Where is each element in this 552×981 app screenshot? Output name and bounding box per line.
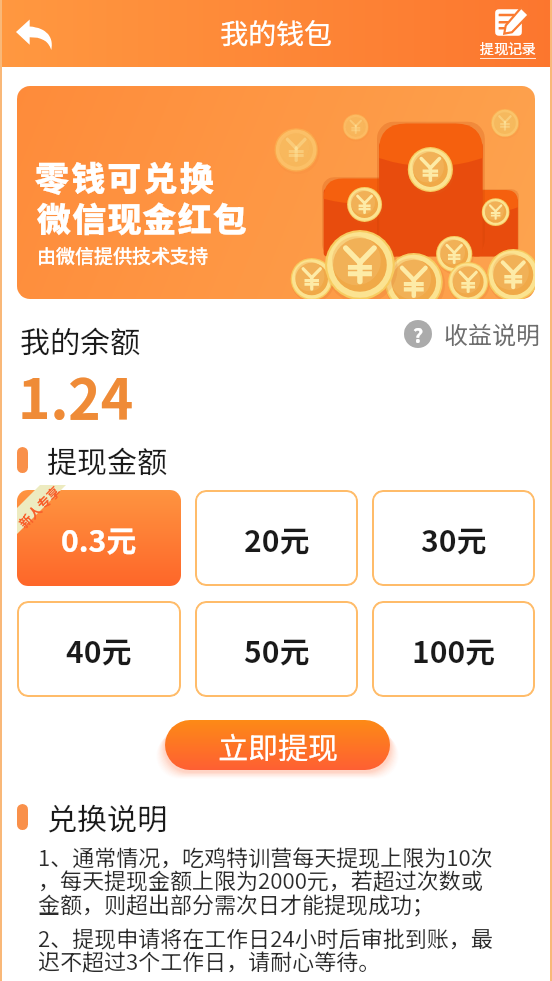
staticText: 50元	[244, 628, 310, 671]
staticText: 由微信提供技术支持	[37, 241, 209, 269]
button[interactable]: 40元	[17, 601, 181, 697]
staticText: 收益说明	[444, 316, 540, 351]
staticText: 1、通常情况，吃鸡特训营每天提现上限为10次 ，每天提现金额上限为2000元，若…	[38, 840, 493, 919]
staticText: 提现金额	[47, 438, 167, 481]
staticText: 立即提现	[218, 724, 338, 767]
button[interactable]: Back	[8, 7, 62, 61]
staticText: 我的钱包	[220, 12, 333, 53]
button[interactable]: 20元	[195, 490, 358, 586]
staticText: 我的余额	[20, 318, 140, 361]
staticText: 100元	[412, 628, 496, 671]
staticText: 微信现金红包	[37, 193, 249, 242]
button[interactable]: 立即提现	[165, 720, 390, 770]
button[interactable]: 30元	[372, 490, 535, 586]
staticText: 兑换说明	[47, 795, 167, 838]
staticText: 0.3元	[61, 517, 137, 560]
staticText: 40元	[66, 628, 132, 671]
staticText: 1.24	[18, 355, 134, 435]
button[interactable]: 提现记录	[480, 8, 536, 59]
staticText: 20元	[244, 517, 310, 560]
staticText: 30元	[421, 517, 487, 560]
staticText: 提现记录	[480, 38, 536, 58]
button[interactable]: 100元	[372, 601, 535, 697]
staticText: 零钱可兑换	[35, 152, 216, 201]
button[interactable]: 0.3元	[17, 490, 181, 586]
button[interactable]: 50元	[195, 601, 358, 697]
button[interactable]: 零钱可兑换	[17, 86, 535, 299]
staticText: 新人专享	[14, 481, 65, 532]
button[interactable]: ?	[404, 316, 540, 351]
staticText: 2、提现申请将在工作日24小时后审批到账，最 迟不超过3个工作日，请耐心等待。	[38, 921, 493, 976]
staticText: ?	[413, 320, 424, 348]
